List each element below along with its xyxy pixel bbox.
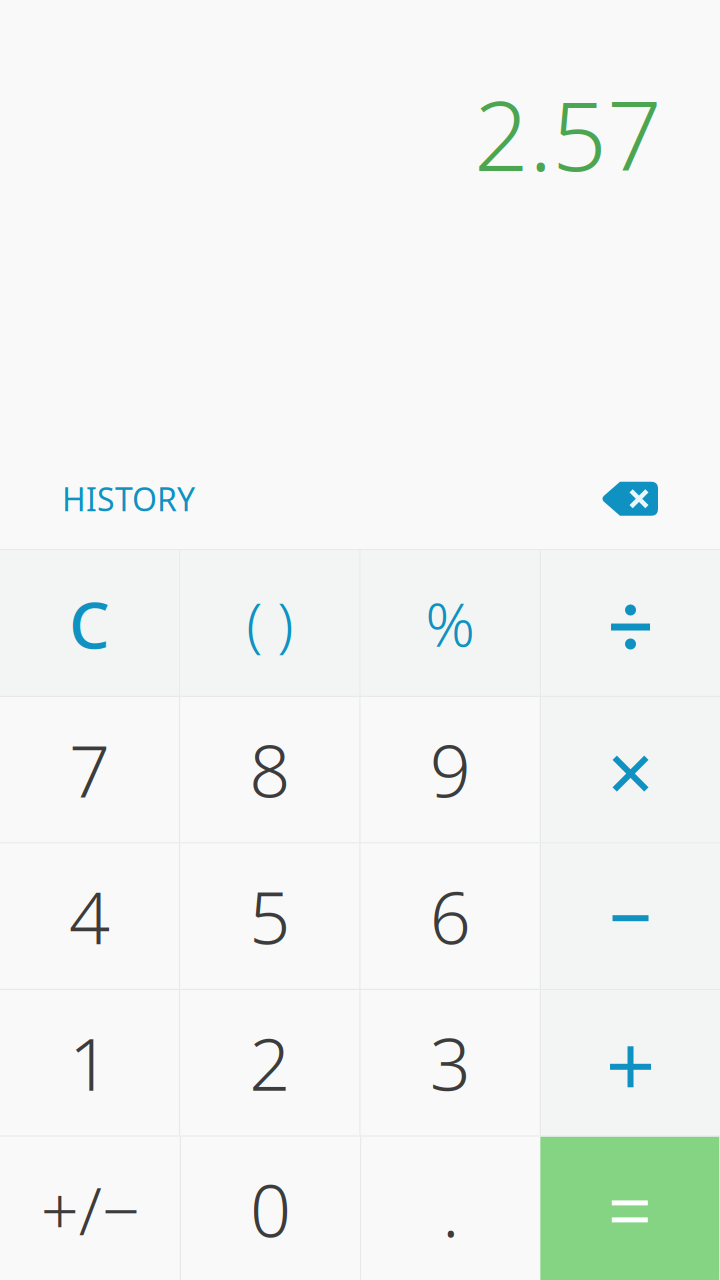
button[interactable]: 3 [361, 990, 540, 1135]
button[interactable]: Divide [541, 550, 720, 696]
button[interactable]: Multiply [541, 697, 720, 842]
button[interactable]: Minus [541, 844, 720, 989]
button[interactable]: 0 [181, 1137, 360, 1280]
staticText: +/− [41, 1165, 140, 1254]
button[interactable]: 1 [0, 990, 179, 1135]
button[interactable]: 7 [0, 697, 179, 842]
staticText: C [69, 581, 110, 666]
staticText: ( ) [246, 584, 293, 662]
staticText: 0 [250, 1162, 291, 1257]
button[interactable]: HISTORY [62, 477, 195, 520]
button[interactable]: % [361, 550, 540, 696]
staticText: HISTORY [62, 477, 195, 520]
button[interactable]: 5 [180, 844, 359, 989]
button[interactable]: 9 [361, 697, 540, 842]
staticText: 8 [249, 722, 290, 817]
staticText: 9 [430, 722, 471, 817]
staticText: 4 [69, 868, 110, 964]
staticText: % [425, 582, 475, 664]
button[interactable]: 6 [361, 844, 540, 989]
button[interactable]: Plus [541, 990, 720, 1135]
staticText: 6 [430, 868, 471, 964]
staticText: 2 [249, 1015, 290, 1111]
button[interactable]: Delete [602, 482, 658, 516]
button[interactable]: 8 [180, 697, 359, 842]
button[interactable]: ( ) [180, 550, 359, 696]
staticText: 1 [69, 1015, 110, 1111]
button[interactable]: Equals [540, 1137, 719, 1280]
staticText: 5 [249, 868, 290, 964]
button[interactable]: . [361, 1137, 540, 1280]
button[interactable]: 4 [0, 844, 179, 989]
button[interactable]: C [0, 550, 179, 696]
staticText: 2.57 [474, 70, 662, 197]
staticText: 7 [69, 722, 110, 817]
button[interactable]: 2 [180, 990, 359, 1135]
staticText: . [442, 1162, 460, 1257]
button[interactable]: +/− [1, 1137, 180, 1280]
staticText: 3 [430, 1015, 471, 1111]
